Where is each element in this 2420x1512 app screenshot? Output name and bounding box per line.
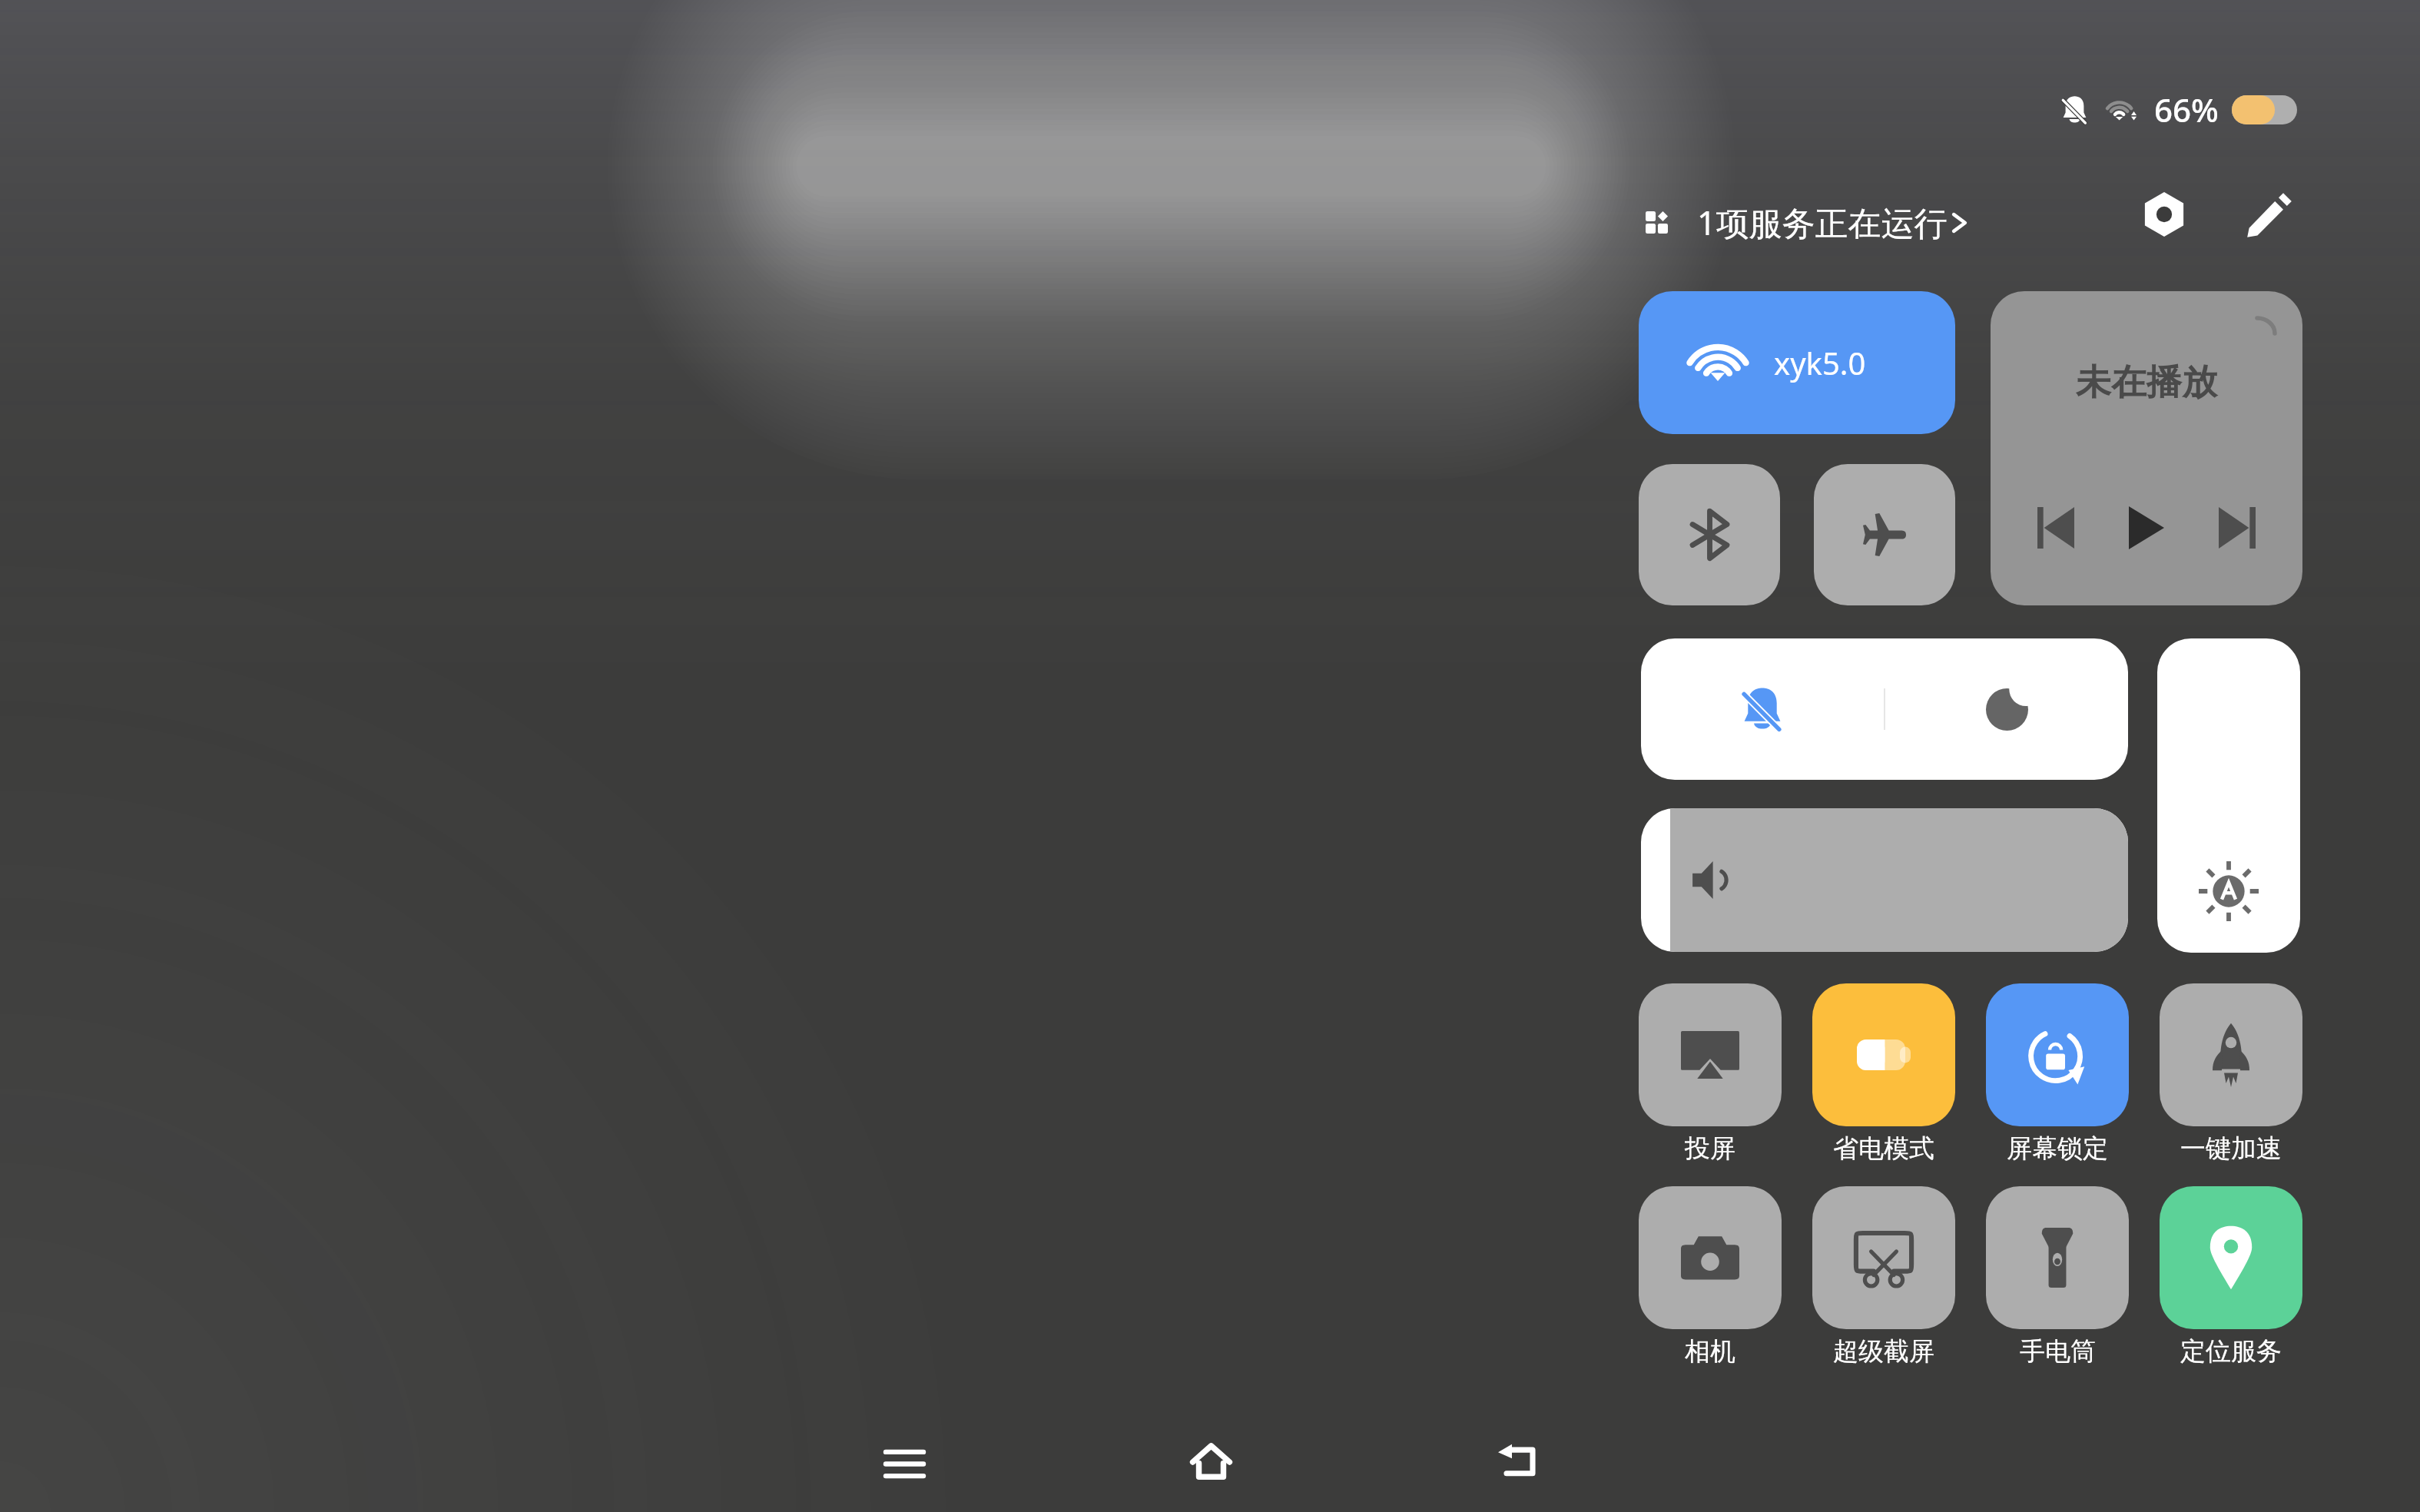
button[interactable]: 未在播放 bbox=[1991, 291, 2302, 605]
button[interactable]: 定位服务 bbox=[2160, 1186, 2302, 1368]
button[interactable]: Play bbox=[2121, 502, 2172, 553]
button[interactable]: Back bbox=[1479, 1421, 1556, 1498]
button[interactable]: 一键加速 bbox=[2160, 983, 2302, 1165]
staticText: 定位服务 bbox=[2180, 1335, 2282, 1368]
button[interactable]: 屏幕锁定 bbox=[1986, 983, 2129, 1165]
button[interactable]: Home bbox=[1172, 1423, 1249, 1500]
button[interactable]: Previous bbox=[2030, 502, 2081, 553]
button[interactable]: xyk5.0 bbox=[1639, 291, 1955, 434]
button[interactable]: 手电筒 bbox=[1986, 1186, 2129, 1368]
button[interactable]: Brightness bbox=[2157, 638, 2300, 953]
staticText: 相机 bbox=[1685, 1335, 1735, 1368]
button[interactable]: 相机 bbox=[1639, 1186, 1782, 1368]
staticText: 屏幕锁定 bbox=[2007, 1132, 2108, 1165]
staticText: 投屏 bbox=[1685, 1132, 1735, 1165]
button[interactable]: Bluetooth bbox=[1639, 464, 1780, 605]
button[interactable]: Settings bbox=[2142, 192, 2186, 237]
staticText: 1项服务正在运行 bbox=[1697, 200, 1948, 245]
button[interactable]: 省电模式 bbox=[1812, 983, 1955, 1165]
staticText: 超级截屏 bbox=[1833, 1335, 1934, 1368]
button[interactable]: Ring mode bbox=[1641, 639, 1884, 779]
button[interactable]: Next bbox=[2212, 502, 2263, 553]
staticText: 未在播放 bbox=[2076, 360, 2217, 405]
button[interactable]: 超级截屏 bbox=[1812, 1186, 1955, 1368]
staticText: 一键加速 bbox=[2180, 1132, 2282, 1165]
staticText: 手电筒 bbox=[2020, 1335, 2096, 1368]
staticText: 66% bbox=[2154, 88, 2219, 131]
button[interactable]: 1项服务正在运行 bbox=[1646, 200, 1967, 245]
button[interactable]: Do not disturb bbox=[1885, 639, 2128, 779]
button[interactable]: 投屏 bbox=[1639, 983, 1782, 1165]
button[interactable]: Recents bbox=[866, 1425, 943, 1502]
button[interactable]: Airplane mode bbox=[1814, 464, 1955, 605]
staticText: xyk5.0 bbox=[1774, 342, 1866, 383]
button[interactable]: Edit bbox=[2246, 192, 2292, 238]
button[interactable]: Volume bbox=[1641, 808, 2128, 952]
staticText: 省电模式 bbox=[1833, 1132, 1934, 1165]
